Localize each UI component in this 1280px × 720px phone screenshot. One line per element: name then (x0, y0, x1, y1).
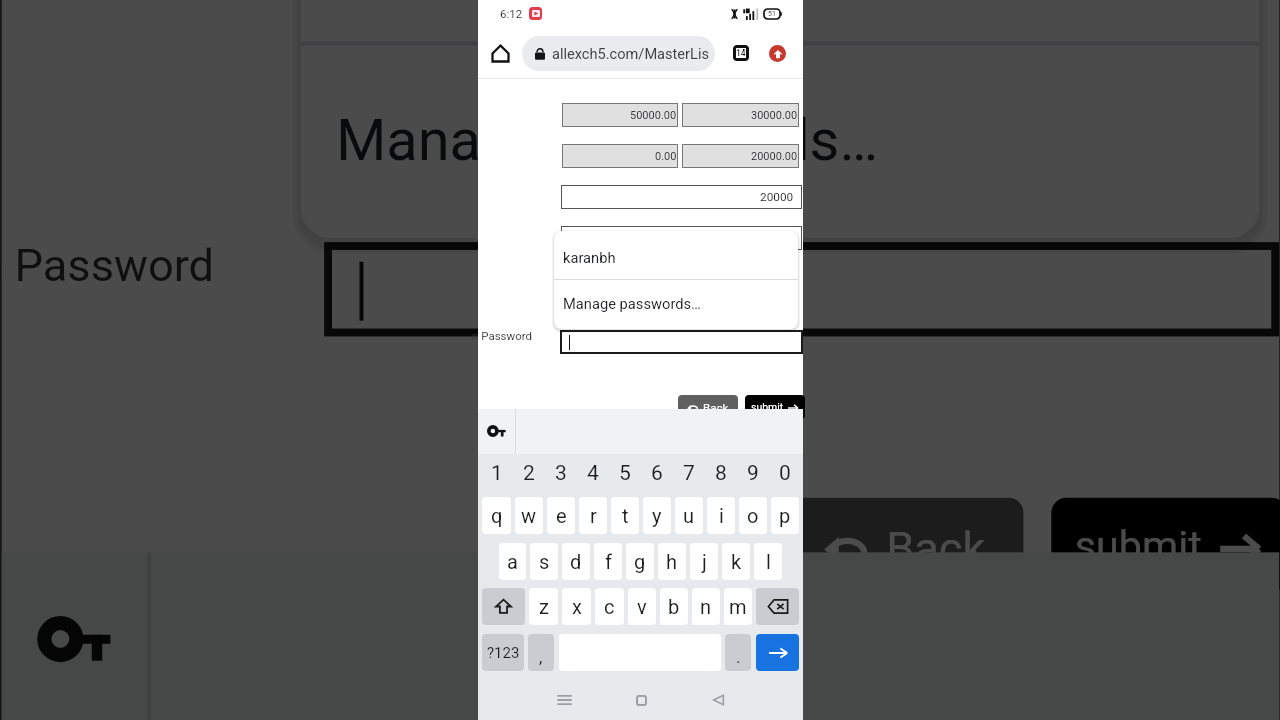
staticText: b (668, 595, 680, 618)
staticText: n Password (0, 238, 214, 289)
button[interactable]: i (707, 497, 735, 534)
staticText: 20000 (760, 190, 794, 204)
button[interactable]: Back (788, 497, 1024, 592)
button[interactable]: 8 (705, 455, 737, 491)
button[interactable]: Manage passwords… (301, 46, 1259, 238)
button[interactable]: karanbh (301, 0, 1259, 42)
staticText: p (779, 504, 791, 527)
staticText: z (539, 595, 549, 618)
button[interactable]: u (675, 497, 703, 534)
button[interactable]: 7 (673, 455, 705, 491)
staticText: 9 (747, 461, 759, 486)
button[interactable]: o (739, 497, 767, 534)
staticText: ?123 (487, 644, 520, 662)
staticText: r (590, 504, 597, 527)
button[interactable]: r (579, 497, 607, 534)
button[interactable]: t (611, 497, 639, 534)
button[interactable]: f (594, 543, 622, 580)
button[interactable]: v (628, 588, 656, 625)
button[interactable]: ?123 (482, 634, 524, 671)
staticText: f (605, 550, 612, 573)
button[interactable]: p (771, 497, 799, 534)
button[interactable]: 0 (769, 455, 801, 491)
button[interactable]: submit (1051, 497, 1280, 592)
button[interactable]: b (660, 588, 688, 625)
staticText: 30000.00 (751, 109, 798, 122)
button[interactable]: Manage passwords… (554, 280, 798, 329)
button[interactable]: x (562, 588, 591, 625)
staticText: 2 (523, 461, 535, 486)
button[interactable]: s (530, 543, 558, 580)
staticText: 6 (651, 461, 663, 486)
button[interactable]: . (725, 634, 751, 671)
button[interactable]: k (722, 543, 750, 580)
staticText: , (539, 647, 543, 667)
button[interactable]: 2 (513, 455, 545, 491)
staticText: . (736, 647, 741, 667)
button[interactable]: d (562, 543, 590, 580)
button[interactable]: submit (745, 395, 805, 419)
staticText: 50000.00 (630, 109, 677, 122)
staticText: u (683, 504, 695, 527)
button[interactable]: j (690, 543, 718, 580)
button[interactable]: allexch5.com/MasterLis (522, 36, 715, 71)
button[interactable]: 1 (480, 455, 513, 491)
button[interactable]: Back (700, 682, 736, 718)
button[interactable]: m (724, 588, 752, 625)
staticText: Back (886, 521, 988, 572)
staticText: Manage passwords… (563, 295, 701, 312)
button[interactable]: Back (678, 395, 738, 419)
button[interactable]: Home (623, 682, 659, 718)
staticText: y (652, 504, 662, 527)
button[interactable]: a (499, 543, 526, 580)
button[interactable]: q (482, 497, 511, 534)
button[interactable]: w (515, 497, 543, 534)
button[interactable]: 6 (641, 455, 673, 491)
button[interactable]: 5 (609, 455, 641, 491)
button[interactable]: 3 (545, 455, 577, 491)
button[interactable]: Passwords (487, 425, 506, 437)
button[interactable]: y (643, 497, 671, 534)
button[interactable] (756, 588, 799, 625)
staticText: submit (751, 401, 784, 413)
button[interactable] (482, 588, 525, 625)
staticText: Back (703, 401, 729, 414)
staticText: o (747, 504, 759, 527)
button[interactable]: l (754, 543, 782, 580)
staticText: x (572, 595, 582, 618)
button[interactable]: , (528, 634, 554, 671)
staticText: allexch5.com/MasterLis (552, 45, 709, 62)
button[interactable]: e (547, 497, 575, 534)
button[interactable]: Recents (546, 682, 582, 718)
button[interactable]: 9 (737, 455, 769, 491)
staticText: 0.00 (655, 150, 677, 163)
staticText: s (539, 550, 550, 573)
staticText: e (556, 504, 567, 527)
button[interactable]: z (529, 588, 558, 625)
staticText: l (766, 550, 771, 573)
staticText: 7 (683, 461, 695, 486)
staticText: 3 (555, 461, 567, 486)
button[interactable]: g (626, 543, 654, 580)
staticText: submit (1075, 521, 1204, 568)
button[interactable]: h (658, 543, 686, 580)
staticText: v (637, 595, 647, 618)
staticText: 1 (491, 461, 503, 486)
staticText: q (491, 504, 503, 527)
staticText: 8 (715, 461, 727, 486)
button[interactable]: c (595, 588, 624, 625)
button[interactable]: Home (484, 37, 516, 69)
staticText: 51 (768, 10, 776, 18)
button[interactable]: 4 (577, 455, 609, 491)
staticText: Manage passwords… (336, 104, 878, 171)
button[interactable]: n (692, 588, 720, 625)
staticText: 20000.00 (751, 150, 798, 163)
staticText: 14 (736, 48, 746, 58)
button[interactable]: Passwords (37, 615, 112, 663)
button[interactable]: Enter (756, 634, 799, 671)
button[interactable]: karanbh (554, 231, 798, 279)
button[interactable]: Tabs (726, 38, 756, 68)
staticText: n Password (472, 329, 532, 342)
button[interactable]: Downloads (769, 45, 786, 62)
